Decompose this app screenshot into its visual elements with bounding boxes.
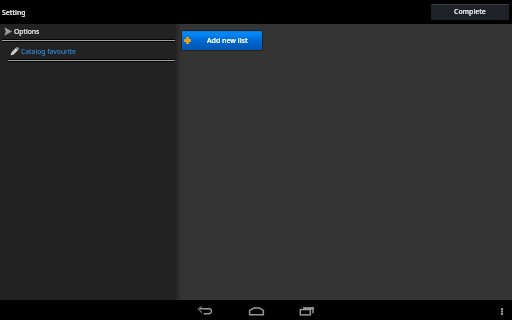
button[interactable]: Complete bbox=[431, 4, 509, 20]
staticText: Options bbox=[14, 27, 40, 36]
button[interactable]: More options bbox=[492, 300, 512, 320]
button[interactable]: Back bbox=[192, 300, 218, 320]
button[interactable]: Add new list bbox=[182, 31, 262, 50]
staticText: Complete bbox=[454, 7, 486, 16]
button[interactable]: Catalog favourite bbox=[0, 43, 175, 59]
staticText: Setting bbox=[2, 8, 26, 17]
button[interactable]: Home bbox=[243, 300, 269, 320]
staticText: Catalog favourite bbox=[21, 47, 76, 56]
staticText: Add new list bbox=[207, 36, 248, 46]
button[interactable]: Recent apps bbox=[294, 300, 320, 320]
button[interactable]: Options bbox=[0, 24, 175, 39]
